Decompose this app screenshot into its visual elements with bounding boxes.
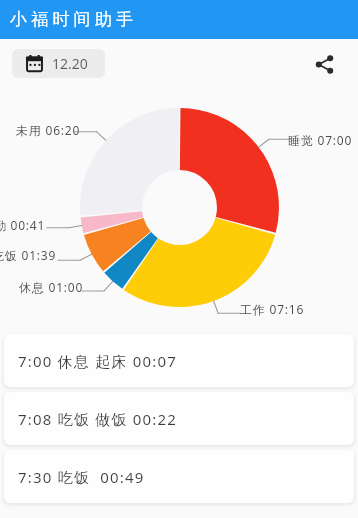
staticText: 吃饭 01:39 bbox=[0, 247, 57, 263]
staticText: 7:30 吃饭 00:49 bbox=[18, 467, 145, 487]
staticText: 睡觉 07:00 bbox=[288, 132, 353, 148]
button[interactable]: 7:30 吃饭 00:49 bbox=[4, 450, 354, 503]
button[interactable]: 12.20 bbox=[12, 49, 105, 78]
staticText: 工作 07:16 bbox=[240, 301, 305, 317]
staticText: 小福时间助手 bbox=[10, 9, 138, 30]
staticText: 休息 01:00 bbox=[19, 279, 84, 295]
button[interactable]: 小福时间助手 bbox=[0, 0, 358, 39]
button[interactable]: 7:08 吃饭 做饭 00:22 bbox=[4, 392, 354, 445]
staticText: 7:00 休息 起床 00:07 bbox=[18, 351, 178, 371]
staticText: 12.20 bbox=[52, 54, 88, 73]
staticText: 未用 06:20 bbox=[16, 122, 81, 138]
button[interactable]: 7:00 休息 起床 00:07 bbox=[4, 334, 354, 387]
button[interactable]: Share bbox=[313, 53, 335, 75]
staticText: 7:08 吃饭 做饭 00:22 bbox=[18, 409, 178, 429]
staticText: 通勤 00:41 bbox=[0, 217, 46, 233]
